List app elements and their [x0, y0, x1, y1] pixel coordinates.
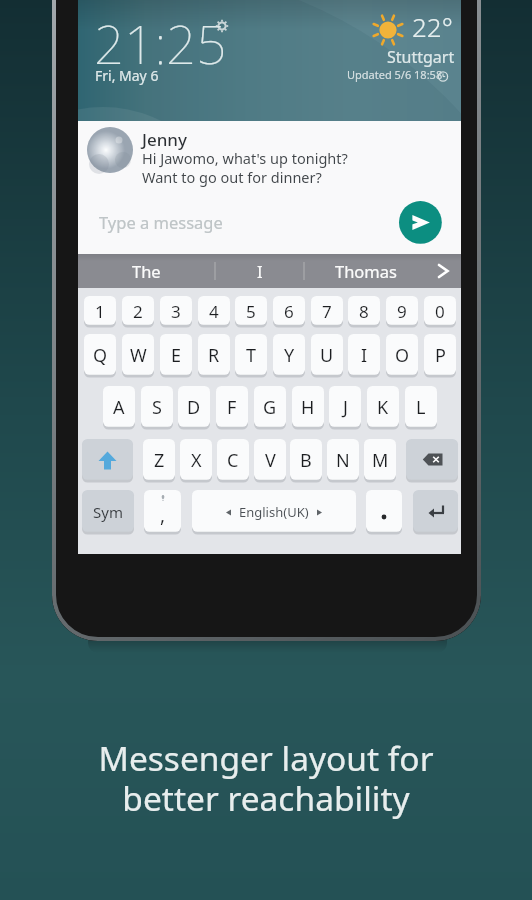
staticText: X — [191, 448, 202, 473]
button[interactable]: 9 — [386, 296, 418, 326]
staticText: K — [377, 395, 389, 420]
button[interactable]: Q — [84, 334, 116, 376]
staticText: S — [152, 395, 162, 420]
button[interactable]: T — [235, 334, 267, 376]
button[interactable]: 2 — [122, 296, 154, 326]
button[interactable]: E — [160, 334, 192, 376]
button[interactable]: The — [78, 254, 215, 288]
button[interactable]: R — [198, 334, 230, 376]
button[interactable]: A — [103, 386, 135, 428]
staticText: Type a message — [99, 211, 223, 233]
button[interactable] — [366, 490, 402, 533]
staticText: The — [132, 260, 161, 282]
staticText: Z — [154, 448, 165, 473]
button[interactable]: O — [386, 334, 418, 376]
button[interactable]: U — [311, 334, 343, 376]
staticText: R — [208, 343, 220, 368]
button[interactable]: W — [122, 334, 154, 376]
button[interactable]: 5 — [235, 296, 267, 326]
staticText: better reachability — [0, 775, 532, 821]
staticText: Thomas — [335, 260, 397, 282]
button[interactable]: 8 — [348, 296, 380, 326]
staticText: Messenger layout for — [0, 735, 532, 781]
staticText: J — [343, 395, 348, 420]
staticText: D — [187, 395, 201, 420]
button[interactable]: 3 — [160, 296, 192, 326]
staticText: G — [263, 395, 277, 420]
staticText: E — [171, 343, 182, 368]
button[interactable]: F — [216, 386, 248, 428]
staticText: B — [300, 448, 312, 473]
button[interactable]: C — [217, 439, 249, 481]
button[interactable]: Sym — [82, 490, 134, 533]
button[interactable]: 7 — [311, 296, 343, 326]
staticText: F — [227, 395, 237, 420]
button[interactable]: 0 — [424, 296, 456, 326]
staticText: 22° — [412, 9, 453, 44]
staticText: Jenny — [142, 128, 187, 151]
staticText: W — [130, 343, 147, 368]
staticText: A — [113, 395, 125, 420]
staticText: T — [246, 343, 257, 368]
button[interactable]: N — [327, 439, 359, 481]
staticText: Y — [284, 343, 295, 368]
staticText: 7 — [322, 300, 332, 323]
button[interactable]: G — [254, 386, 286, 428]
button[interactable]: B — [290, 439, 322, 481]
staticText: English(UK) — [239, 503, 309, 521]
staticText: M — [372, 448, 389, 473]
button[interactable]: 1 — [84, 296, 116, 326]
button[interactable]: Z — [143, 439, 175, 481]
staticText: 21:25 — [94, 7, 227, 79]
button[interactable]: , — [144, 490, 181, 533]
staticText: P — [435, 343, 446, 368]
button[interactable] — [413, 490, 458, 533]
staticText: 4 — [209, 300, 219, 323]
staticText: C — [227, 448, 239, 473]
button[interactable]: I — [215, 254, 304, 288]
button[interactable]: K — [367, 386, 399, 428]
staticText: 0 — [435, 300, 445, 323]
staticText: 3 — [171, 300, 181, 323]
staticText: 5 — [246, 300, 256, 323]
button[interactable] — [428, 254, 461, 288]
button[interactable] — [406, 439, 458, 481]
button[interactable]: S — [141, 386, 173, 428]
button[interactable]: 6 — [273, 296, 305, 326]
button[interactable] — [82, 439, 133, 481]
button[interactable]: H — [292, 386, 324, 428]
button[interactable]: 4 — [198, 296, 230, 326]
staticText: 9 — [397, 300, 407, 323]
staticText: 6 — [284, 300, 294, 323]
button[interactable] — [78, 121, 461, 254]
staticText: Q — [93, 343, 108, 368]
staticText: Stuttgart — [387, 46, 455, 68]
staticText: Updated 5/6 18:58 — [347, 67, 443, 82]
staticText: 8 — [359, 300, 369, 323]
staticText: 1 — [95, 300, 105, 323]
button[interactable]: I — [348, 334, 380, 376]
staticText: , — [160, 502, 166, 528]
staticText: H — [301, 395, 315, 420]
staticText: V — [265, 448, 276, 473]
button[interactable]: Thomas — [304, 254, 428, 288]
staticText: Sym — [93, 502, 123, 522]
button[interactable]: English(UK) — [192, 490, 356, 533]
button[interactable]: J — [329, 386, 361, 428]
button[interactable] — [399, 201, 442, 244]
button[interactable]: Y — [273, 334, 305, 376]
staticText: I — [361, 343, 368, 368]
staticText: 2 — [133, 300, 143, 323]
staticText: O — [395, 343, 410, 368]
staticText: U — [320, 343, 334, 368]
button[interactable]: P — [424, 334, 456, 376]
button[interactable]: L — [405, 386, 437, 428]
staticText: N — [336, 448, 350, 473]
button[interactable]: D — [178, 386, 210, 428]
button[interactable]: V — [254, 439, 286, 481]
staticText: Want to go out for dinner? — [142, 167, 322, 187]
button[interactable]: X — [180, 439, 212, 481]
staticText: Hi Jawomo, what's up tonight? — [142, 148, 348, 168]
button[interactable]: M — [364, 439, 396, 481]
staticText: L — [416, 395, 426, 420]
